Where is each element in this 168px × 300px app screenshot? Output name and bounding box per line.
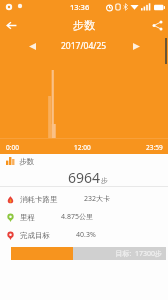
button[interactable]: 完成目标 [0, 226, 168, 244]
button[interactable]: 目标: 17300步 [11, 247, 166, 260]
staticText: 13:36 [70, 2, 90, 12]
staticText: 消耗卡路里 [20, 195, 58, 204]
staticText: 完成目标 [20, 231, 50, 240]
staticText: 4.875公里 [61, 212, 93, 222]
staticText: 23:59 [146, 143, 163, 152]
staticText: 6964 [68, 168, 101, 186]
staticText: 40.3% [76, 230, 96, 240]
button[interactable]: Share [146, 14, 168, 36]
button[interactable]: 消耗卡路里 [0, 190, 168, 208]
staticText: 步 [101, 176, 108, 185]
button[interactable]: Next day [128, 38, 144, 54]
button[interactable]: Previous day [24, 38, 40, 54]
staticText: 步数 [19, 157, 34, 166]
staticText: 步数 [73, 18, 95, 32]
staticText: 2017/04/25 [61, 40, 107, 52]
button[interactable]: Back [0, 14, 22, 36]
staticText: 0:00 [6, 143, 19, 152]
staticText: 12:00 [74, 143, 91, 152]
staticText: 里程 [20, 213, 35, 222]
staticText: 232大卡 [84, 194, 111, 204]
staticText: 目标: 17300步 [115, 249, 162, 259]
button[interactable]: 里程 [0, 208, 168, 226]
